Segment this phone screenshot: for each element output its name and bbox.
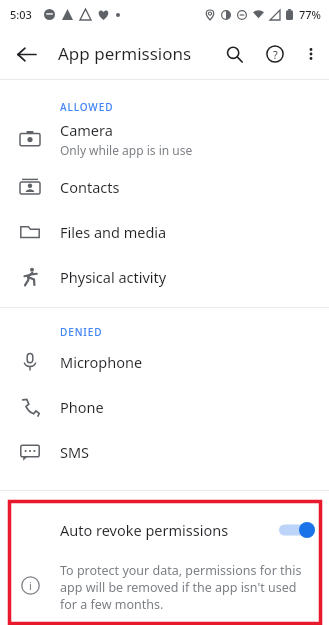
button[interactable]: Files and media bbox=[0, 209, 329, 254]
button[interactable]: More options bbox=[294, 37, 328, 71]
staticText: 77% bbox=[299, 7, 321, 22]
staticText: i bbox=[29, 578, 32, 593]
staticText: Microphone bbox=[60, 352, 143, 372]
button[interactable]: Help bbox=[256, 35, 294, 73]
staticText: Only while app is in use bbox=[60, 142, 193, 158]
staticText: ALLOWED bbox=[60, 100, 114, 114]
button[interactable]: Auto revoke permissions bbox=[0, 500, 329, 560]
staticText: 5:03 bbox=[10, 7, 32, 22]
button[interactable]: SMS bbox=[0, 429, 329, 474]
staticText: DENIED bbox=[60, 325, 103, 339]
staticText: Camera bbox=[60, 120, 113, 140]
button[interactable]: Search bbox=[215, 35, 253, 73]
staticText: Files and media bbox=[60, 222, 167, 242]
button[interactable]: Contacts bbox=[0, 164, 329, 209]
staticText: SMS bbox=[60, 442, 90, 462]
button[interactable]: Phone bbox=[0, 384, 329, 429]
staticText: To protect your data, permissions for th… bbox=[60, 562, 310, 613]
staticText: ? bbox=[273, 47, 278, 62]
button[interactable]: Physical activity bbox=[0, 254, 329, 299]
button[interactable]: Back bbox=[6, 34, 46, 74]
staticText: Auto revoke permissions bbox=[60, 520, 279, 540]
staticText: Phone bbox=[60, 397, 104, 417]
staticText: Contacts bbox=[60, 177, 120, 197]
staticText: Physical activity bbox=[60, 267, 167, 287]
staticText: App permissions bbox=[58, 42, 192, 65]
button[interactable]: Microphone bbox=[0, 339, 329, 384]
button[interactable]: Camera bbox=[0, 114, 329, 164]
